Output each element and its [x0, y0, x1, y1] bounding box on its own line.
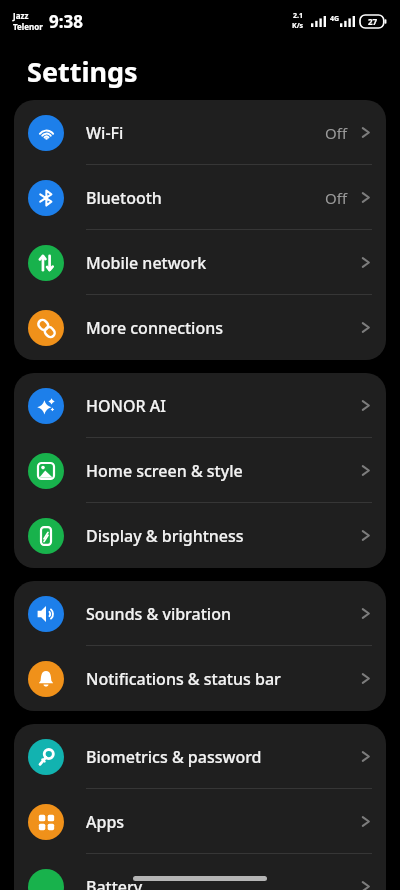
- staticText: 9:38: [49, 10, 83, 33]
- button[interactable]: Wi-Fi: [14, 100, 386, 165]
- staticText: Mobile network: [86, 252, 357, 274]
- button[interactable]: Home screen & style: [14, 438, 386, 503]
- staticText: Notifications & status bar: [86, 668, 357, 690]
- staticText: Telenor: [13, 21, 43, 32]
- staticText: Wi-Fi: [86, 122, 325, 144]
- staticText: Settings: [27, 53, 138, 90]
- button[interactable]: Sounds & vibration: [14, 581, 386, 646]
- staticText: 2.1: [293, 11, 303, 21]
- staticText: Jazz: [13, 10, 29, 21]
- button[interactable]: Biometrics & password: [14, 724, 386, 789]
- staticText: 27: [368, 16, 378, 27]
- button[interactable]: More connections: [14, 295, 386, 360]
- button[interactable]: Notifications & status bar: [14, 646, 386, 711]
- staticText: Off: [325, 123, 348, 143]
- staticText: Off: [325, 188, 348, 208]
- button[interactable]: Bluetooth: [14, 165, 386, 230]
- staticText: Battery: [86, 876, 357, 890]
- staticText: Sounds & vibration: [86, 603, 357, 625]
- staticText: Home screen & style: [86, 460, 357, 482]
- button[interactable]: HONOR AI: [14, 373, 386, 438]
- button[interactable]: Display & brightness: [14, 503, 386, 568]
- staticText: Biometrics & password: [86, 746, 357, 768]
- staticText: Display & brightness: [86, 525, 357, 547]
- staticText: K/s: [292, 21, 304, 31]
- button[interactable]: Battery: [14, 854, 386, 890]
- button[interactable]: Mobile network: [14, 230, 386, 295]
- staticText: Apps: [86, 811, 357, 833]
- staticText: HONOR AI: [86, 395, 357, 417]
- button[interactable]: Apps: [14, 789, 386, 854]
- staticText: 4G: [330, 14, 340, 24]
- staticText: More connections: [86, 317, 357, 339]
- staticText: Bluetooth: [86, 187, 325, 209]
